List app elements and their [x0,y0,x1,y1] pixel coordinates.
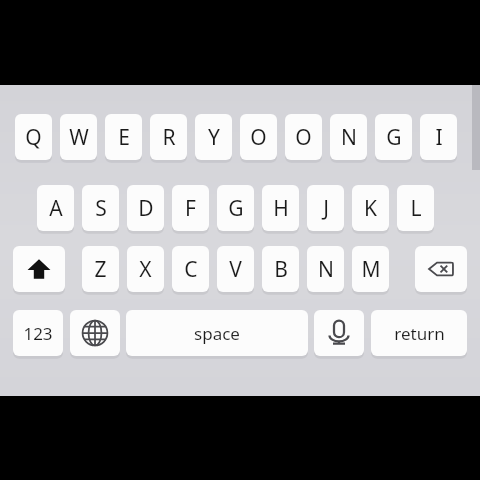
staticText: A [49,194,63,223]
button[interactable]: I [420,114,457,160]
staticText: G [386,123,402,152]
button[interactable]: Q [15,114,52,160]
staticText: O [295,123,312,152]
staticText: V [229,255,242,284]
staticText: D [138,194,154,223]
button[interactable]: M [352,246,389,292]
staticText: O [250,123,267,152]
button[interactable]: C [172,246,209,292]
button[interactable]: O [285,114,322,160]
button[interactable]: E [105,114,142,160]
button[interactable]: Z [82,246,119,292]
button[interactable]: Shift [13,246,65,292]
button[interactable]: B [262,246,299,292]
staticText: I [435,123,443,152]
button[interactable]: R [150,114,187,160]
button[interactable]: X [127,246,164,292]
staticText: X [139,255,152,284]
staticText: K [364,194,377,223]
button[interactable]: L [397,185,434,231]
button[interactable]: G [375,114,412,160]
staticText: L [410,194,422,223]
button[interactable]: O [240,114,277,160]
staticText: B [274,255,288,284]
staticText: C [184,255,198,284]
staticText: N [318,255,334,284]
button[interactable]: Dictation [314,310,364,356]
staticText: H [273,194,289,223]
button[interactable]: return [371,310,467,356]
button[interactable]: G [217,185,254,231]
button[interactable]: A [37,185,74,231]
button[interactable]: N [330,114,367,160]
button[interactable]: K [352,185,389,231]
staticText: E [118,123,130,152]
staticText: space [194,322,240,345]
button[interactable]: S [82,185,119,231]
staticText: S [95,194,107,223]
staticText: J [323,194,329,223]
button[interactable]: 123 [13,310,63,356]
button[interactable]: Backspace [415,246,467,292]
staticText: return [394,322,445,345]
button[interactable]: H [262,185,299,231]
staticText: Q [25,123,42,152]
staticText: F [185,194,196,223]
button[interactable]: D [127,185,164,231]
button[interactable]: Next keyboard [70,310,120,356]
button[interactable]: W [60,114,97,160]
staticText: N [341,123,357,152]
staticText: R [162,123,176,152]
button[interactable]: J [307,185,344,231]
staticText: Y [208,123,220,152]
button[interactable]: N [307,246,344,292]
staticText: Z [94,255,107,284]
staticText: M [361,255,381,284]
button[interactable]: F [172,185,209,231]
button[interactable]: space [126,310,308,356]
staticText: G [228,194,244,223]
staticText: W [69,123,89,152]
button[interactable]: Y [195,114,232,160]
staticText: 123 [23,322,53,345]
button[interactable]: V [217,246,254,292]
